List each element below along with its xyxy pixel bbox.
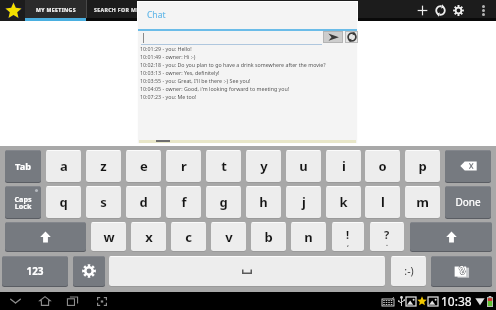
button[interactable]: Settings: [447, 0, 470, 21]
button[interactable]: Back: [3, 292, 28, 310]
button[interactable]: i: [326, 150, 361, 182]
button[interactable]: !: [332, 222, 364, 251]
staticText: v: [225, 228, 233, 246]
button[interactable]: s: [86, 186, 121, 218]
button[interactable]: Caps Lock: [5, 186, 41, 218]
staticText: s: [100, 193, 107, 211]
button[interactable]: v: [211, 222, 246, 251]
staticText: a: [60, 157, 68, 175]
staticText: 10:04:05 - owner: Good, i'm looking forw…: [140, 85, 290, 92]
button[interactable]: ?: [370, 222, 404, 251]
staticText: z: [100, 157, 107, 175]
staticText: d: [139, 193, 148, 211]
button[interactable]: Refresh chat: [345, 31, 358, 43]
button[interactable]: More options: [473, 0, 493, 21]
staticText: MY MEETINGS: [36, 6, 76, 13]
staticText: ,: [347, 239, 349, 249]
staticText: .: [386, 239, 388, 249]
button[interactable]: c: [171, 222, 206, 251]
button[interactable]: d: [126, 186, 161, 218]
staticText: Caps Lock: [14, 194, 32, 211]
button[interactable]: r: [166, 150, 201, 182]
button[interactable]: Screenshot: [89, 292, 114, 310]
button[interactable]: a: [46, 150, 81, 182]
button[interactable]: Refresh: [429, 0, 451, 21]
button[interactable]: 123: [2, 256, 68, 286]
staticText: e: [140, 157, 148, 175]
staticText: y: [260, 157, 268, 175]
staticText: i: [342, 157, 346, 175]
staticText: Tab: [15, 160, 31, 173]
staticText: m: [416, 193, 429, 211]
staticText: l: [381, 193, 385, 211]
button[interactable]: l: [365, 186, 400, 218]
button[interactable]: Send: [323, 31, 343, 43]
staticText: 10:07:23 - you: Me too!: [140, 93, 197, 100]
button[interactable]: Add: [411, 0, 433, 21]
staticText: w: [103, 228, 115, 246]
button[interactable]: b: [251, 222, 286, 251]
staticText: :-): [404, 264, 414, 278]
staticText: 10:38: [441, 293, 472, 309]
staticText: h: [259, 193, 268, 211]
button[interactable]: f: [166, 186, 201, 218]
staticText: o: [378, 157, 387, 175]
staticText: u: [299, 157, 308, 175]
button[interactable]: h: [246, 186, 281, 218]
button[interactable]: backspace: [445, 150, 491, 182]
button[interactable]: Recents: [59, 292, 85, 310]
button[interactable]: shift: [5, 222, 86, 251]
button[interactable]: MY MEETINGS: [25, 0, 86, 21]
button[interactable]: space: [109, 256, 385, 286]
button[interactable]: SEARCH FOR MEETINGS: [87, 0, 179, 21]
button[interactable]: attach: [431, 256, 492, 286]
staticText: n: [304, 228, 313, 246]
button[interactable]: g: [206, 186, 241, 218]
button[interactable]: u: [286, 150, 321, 182]
button[interactable]: w: [91, 222, 126, 251]
button[interactable]: o: [365, 150, 400, 182]
staticText: c: [185, 228, 192, 246]
staticText: x: [145, 228, 153, 246]
staticText: b: [264, 228, 273, 246]
staticText: j: [302, 193, 306, 211]
staticText: ?: [384, 227, 390, 242]
button[interactable]: Tab: [5, 150, 41, 182]
button[interactable]: m: [405, 186, 440, 218]
button[interactable]: App icon: [1, 0, 26, 21]
button[interactable]: e: [126, 150, 161, 182]
button[interactable]: Home: [32, 292, 58, 310]
button[interactable]: [141, 31, 322, 45]
button[interactable]: gear: [73, 256, 105, 286]
staticText: 10:01:29 - you: Hello!: [140, 45, 192, 52]
staticText: 10:03:13 - owner: Yes, definitely!: [140, 69, 220, 76]
staticText: q: [59, 193, 68, 211]
staticText: k: [339, 193, 348, 211]
button[interactable]: n: [291, 222, 326, 251]
staticText: 123: [26, 264, 44, 278]
button[interactable]: q: [46, 186, 81, 218]
staticText: g: [219, 193, 228, 211]
staticText: r: [181, 157, 187, 175]
staticText: SEARCH FOR MEETINGS: [94, 6, 161, 13]
staticText: 10:01:49 - owner: Hi :-): [140, 53, 196, 60]
button[interactable]: j: [286, 186, 321, 218]
staticText: 10:02:18 - you: Do you plan to go have a…: [140, 61, 326, 68]
button[interactable]: k: [326, 186, 361, 218]
button[interactable]: shift: [410, 222, 492, 251]
button[interactable]: Done: [445, 186, 491, 218]
staticText: p: [418, 157, 427, 175]
staticText: t: [221, 157, 227, 175]
staticText: 10:03:55 - you: Great, I'll be there :-)…: [140, 77, 251, 84]
staticText: Done: [455, 195, 481, 209]
staticText: Chat: [147, 9, 166, 21]
button[interactable]: p: [405, 150, 440, 182]
staticText: !: [346, 227, 350, 242]
button[interactable]: :-): [391, 256, 426, 286]
staticText: f: [181, 193, 187, 211]
button[interactable]: y: [246, 150, 281, 182]
button[interactable]: z: [86, 150, 121, 182]
button[interactable]: t: [206, 150, 241, 182]
button[interactable]: x: [131, 222, 166, 251]
